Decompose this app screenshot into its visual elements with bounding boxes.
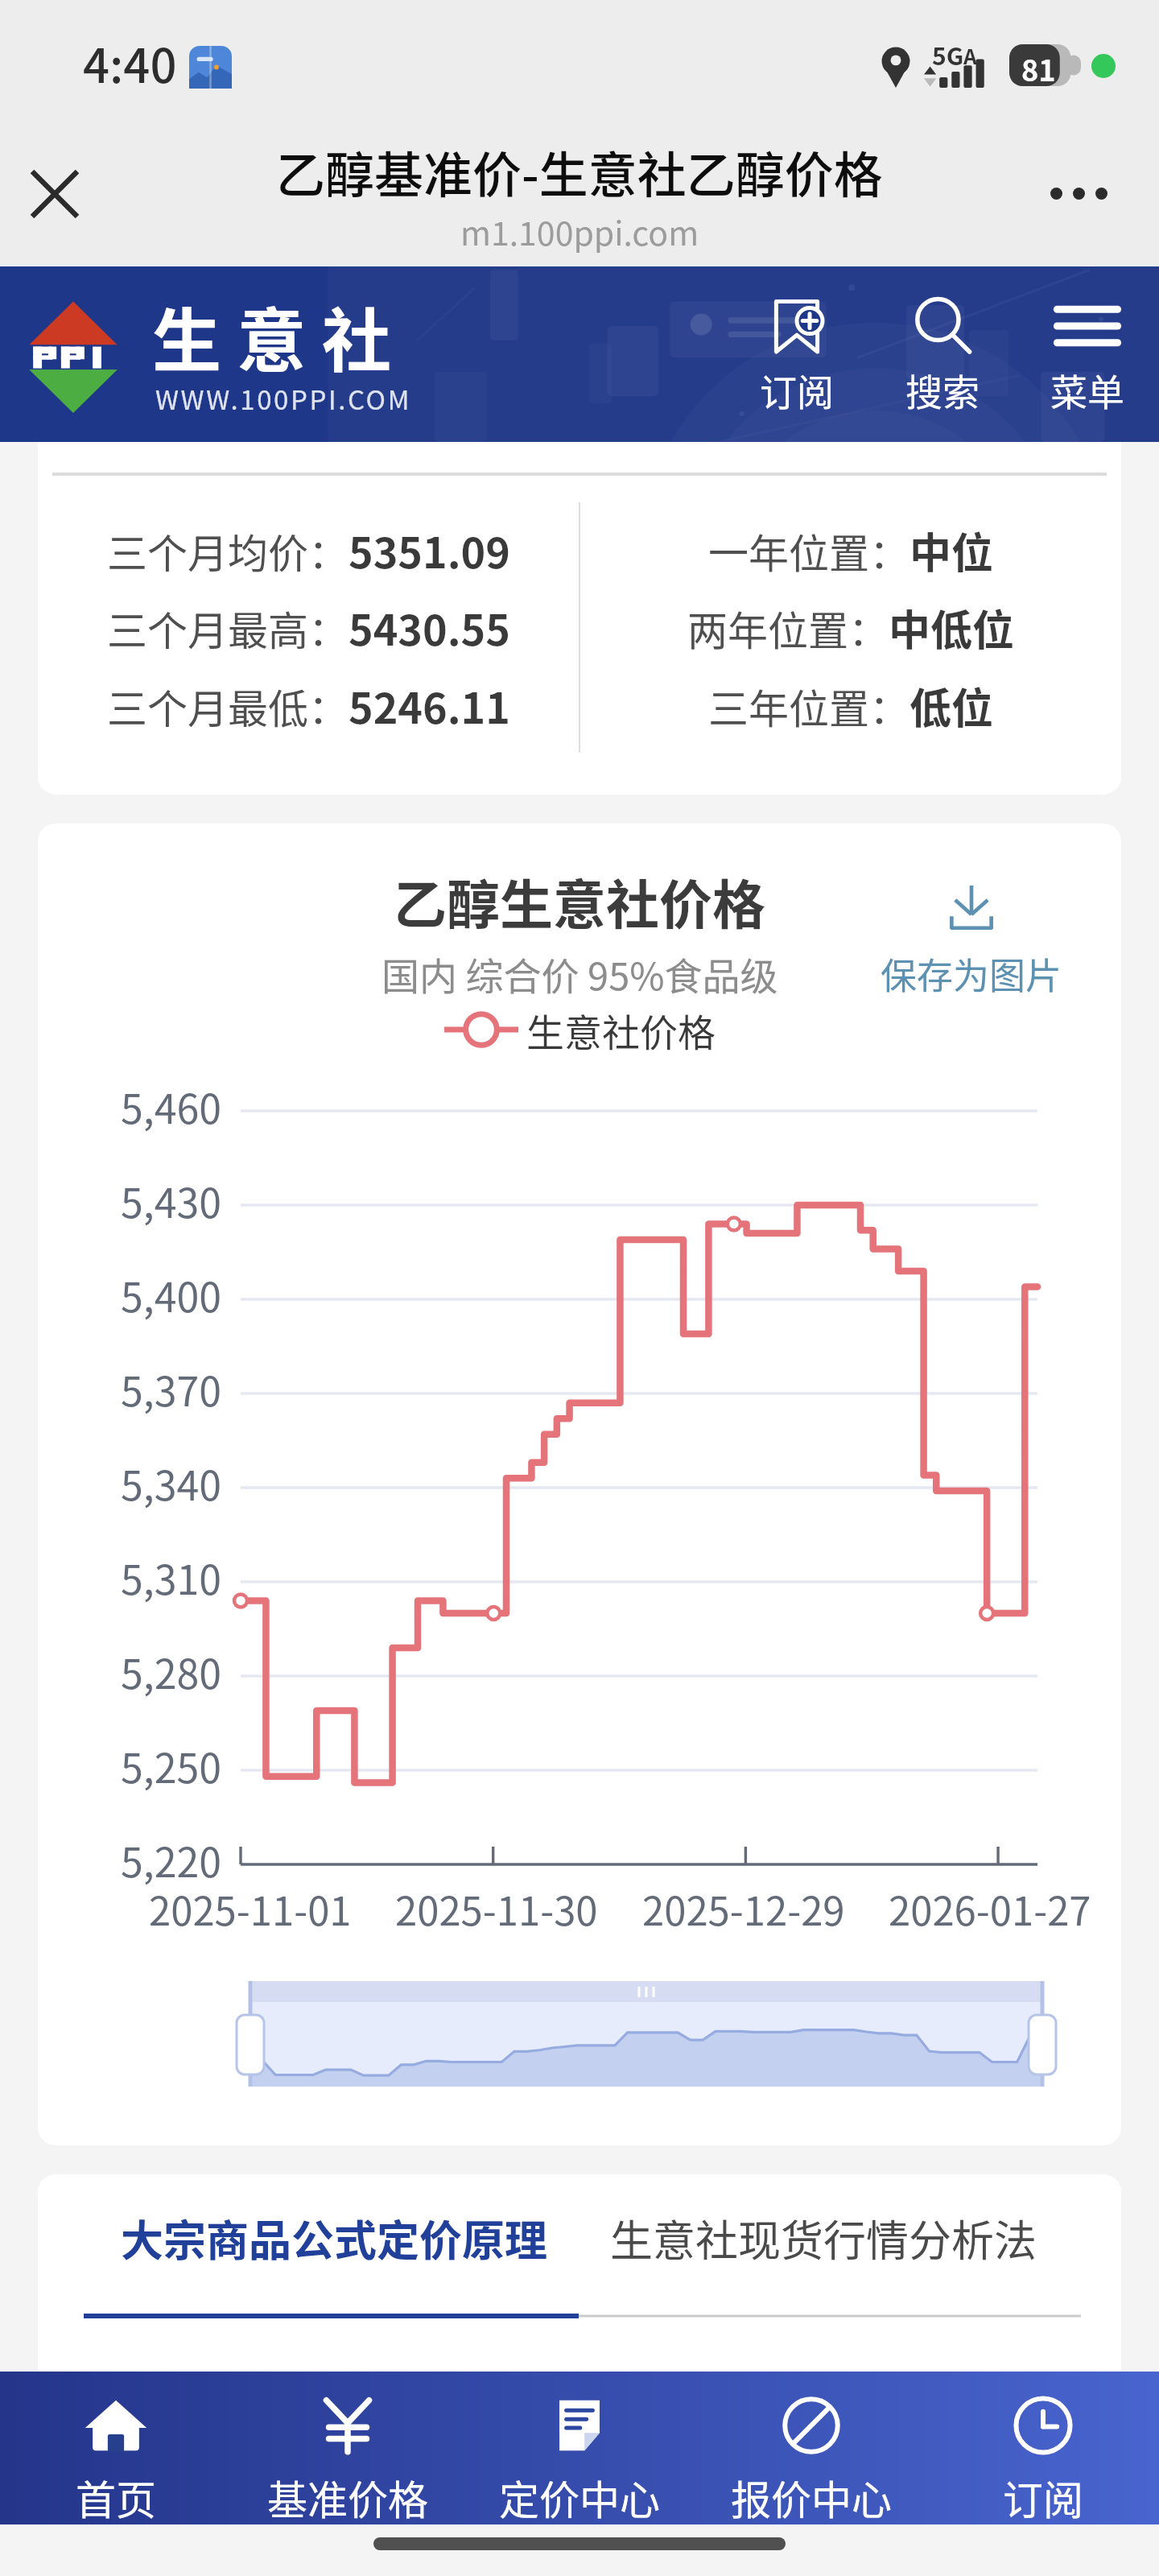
staticText: A xyxy=(963,40,977,71)
staticText: 生 意 社 xyxy=(152,286,392,386)
staticText: 5,280 xyxy=(38,1642,221,1700)
staticText: 保存为图片 xyxy=(881,947,1062,1000)
staticText: 定价中心 xyxy=(499,2468,660,2524)
staticText: 三个月最高： xyxy=(107,599,349,657)
button[interactable]: 订阅 xyxy=(734,291,860,420)
staticText: 4:40 xyxy=(83,29,177,97)
staticText: 低位 xyxy=(909,675,994,736)
staticText: 首页 xyxy=(76,2468,156,2524)
staticText: 5G xyxy=(932,37,964,72)
staticText: 三个月均价： xyxy=(107,522,349,580)
button[interactable]: 搜索 xyxy=(880,291,1005,420)
staticText: 中低位 xyxy=(889,597,1015,658)
button[interactable]: More options xyxy=(1034,149,1123,237)
staticText: 大宗商品公式定价原理 xyxy=(121,2207,547,2269)
button[interactable]: 生意社现货行情分析法 xyxy=(610,2207,1037,2269)
button[interactable]: 报价中心 xyxy=(695,2372,927,2524)
staticText: 5,400 xyxy=(38,1265,221,1323)
button[interactable]: 菜单 xyxy=(1025,291,1150,420)
staticText: 中位 xyxy=(909,520,994,580)
staticText: 订阅 xyxy=(760,363,834,417)
button[interactable]: 大宗商品公式定价原理 xyxy=(121,2207,547,2269)
staticText: 一年位置： xyxy=(708,522,909,580)
staticText: WWW.100PPI.COM xyxy=(155,379,412,418)
staticText: 5,430 xyxy=(38,1171,221,1229)
staticText: 搜索 xyxy=(905,363,980,417)
staticText: 国内 综合价 95%食品级 xyxy=(382,946,778,1001)
staticText: 2025-11-30 xyxy=(395,1880,598,1937)
staticText: 5,310 xyxy=(38,1548,221,1606)
staticText: 订阅 xyxy=(1003,2468,1083,2524)
staticText: 2026-01-27 xyxy=(889,1880,1091,1937)
staticText: 乙醇生意社价格 xyxy=(394,862,765,939)
staticText: 三个月最低： xyxy=(107,677,349,735)
button[interactable]: 首页 xyxy=(0,2372,232,2524)
staticText: 81 xyxy=(1021,47,1056,89)
staticText: 5246.11 xyxy=(349,675,510,736)
staticText: 5430.55 xyxy=(349,597,510,658)
staticText: 5351.09 xyxy=(349,520,510,580)
button[interactable]: 定价中心 xyxy=(464,2372,695,2524)
button[interactable]: 基准价格 xyxy=(232,2372,464,2524)
staticText: 基准价格 xyxy=(267,2468,428,2524)
staticText: 报价中心 xyxy=(731,2468,892,2524)
staticText: 生意社价格 xyxy=(526,1002,716,1057)
staticText: 2025-11-01 xyxy=(149,1880,352,1937)
staticText: 5,370 xyxy=(38,1360,221,1418)
button[interactable]: Close xyxy=(10,150,99,238)
staticText: 菜单 xyxy=(1050,363,1124,417)
button[interactable]: 保存为图片 xyxy=(864,885,1079,1000)
staticText: 生意社现货行情分析法 xyxy=(610,2207,1037,2269)
staticText: 5,460 xyxy=(38,1077,221,1135)
staticText: 三年位置： xyxy=(708,677,909,735)
staticText: m1.100ppi.com xyxy=(460,207,699,254)
staticText: 两年位置： xyxy=(687,599,889,657)
staticText: 5,250 xyxy=(38,1736,221,1794)
staticText: 乙醇基准价-生意社乙醇价格 xyxy=(276,136,883,207)
staticText: 5,340 xyxy=(38,1454,221,1512)
button[interactable]: 订阅 xyxy=(927,2372,1159,2524)
staticText: 5,220 xyxy=(38,1831,221,1889)
staticText: 2025-12-29 xyxy=(642,1880,845,1937)
